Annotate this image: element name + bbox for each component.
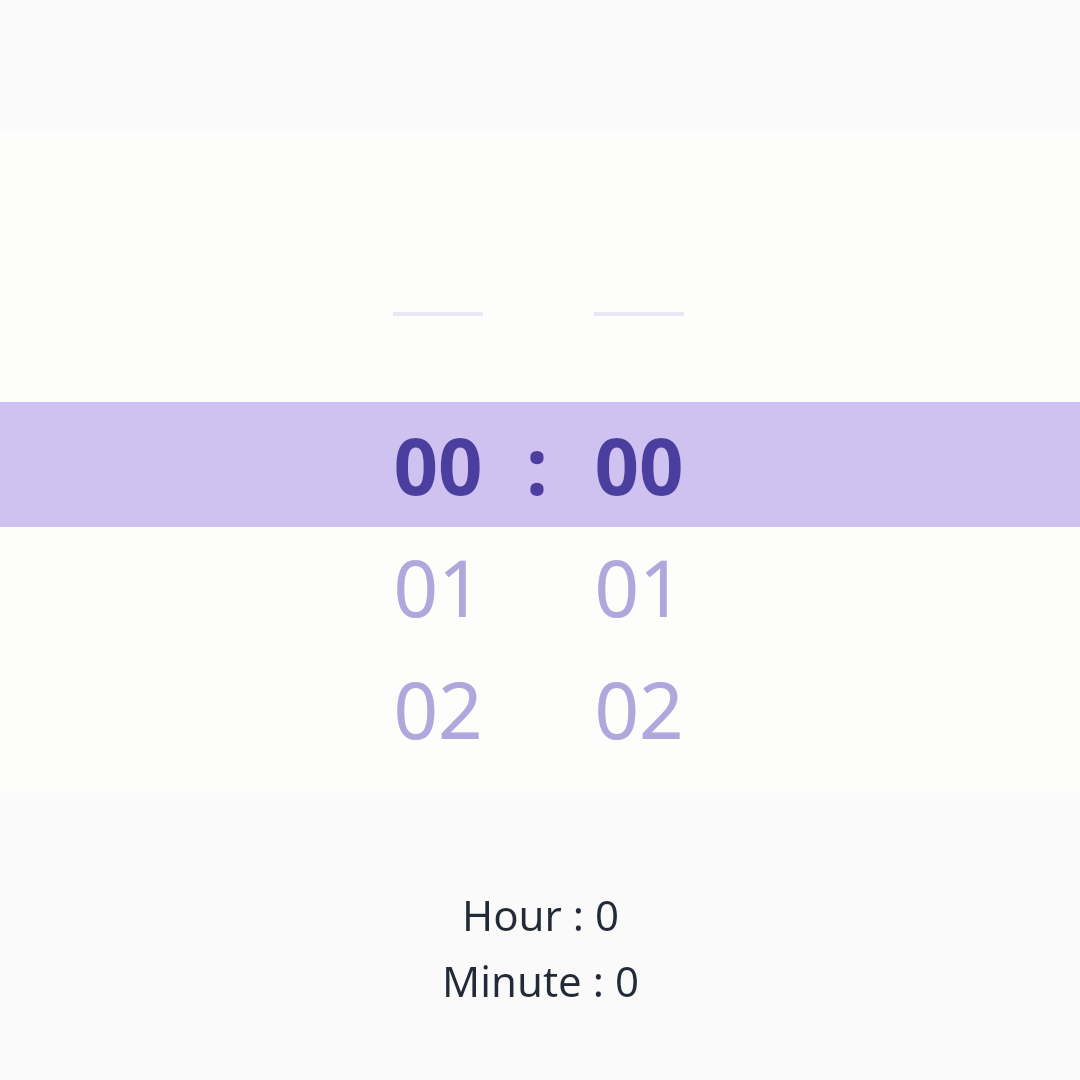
button[interactable]: 01 [554, 526, 724, 648]
staticText: 02 [393, 656, 483, 762]
other: Selected hour [462, 885, 619, 943]
staticText: Hour : 0 [462, 886, 619, 943]
staticText: 02 [594, 656, 684, 762]
staticText: Minute : 0 [442, 952, 639, 1009]
staticText: 00 [393, 412, 483, 518]
staticText: 01 [393, 534, 483, 640]
staticText: 01 [594, 534, 684, 640]
button[interactable]: 00 [353, 404, 523, 526]
staticText: : [526, 412, 548, 518]
button[interactable]: 02 [554, 648, 724, 770]
button[interactable]: 02 [353, 648, 523, 770]
staticText: 00 [594, 412, 684, 518]
button[interactable]: 00 [554, 404, 724, 526]
other: Selected minute [442, 951, 639, 1009]
button[interactable]: 01 [353, 526, 523, 648]
